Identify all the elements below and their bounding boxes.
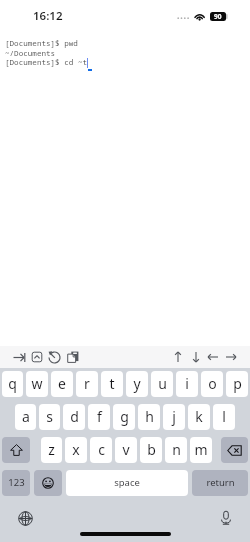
button[interactable]: q bbox=[2, 371, 23, 397]
button[interactable]: Emoji bbox=[34, 470, 62, 496]
staticText: t bbox=[109, 374, 115, 393]
staticText: g bbox=[120, 407, 129, 426]
button[interactable]: o bbox=[201, 371, 223, 397]
staticText: u bbox=[158, 374, 167, 393]
button[interactable]: h bbox=[138, 404, 160, 430]
button[interactable]: p bbox=[226, 371, 248, 397]
button[interactable]: Left bbox=[204, 346, 222, 368]
button[interactable]: c bbox=[90, 437, 112, 463]
staticText: d bbox=[70, 407, 79, 426]
button[interactable]: j bbox=[163, 404, 185, 430]
button[interactable]: v bbox=[115, 437, 137, 463]
button[interactable]: a bbox=[15, 404, 36, 430]
button[interactable]: space bbox=[66, 470, 188, 496]
button[interactable]: s bbox=[39, 404, 60, 430]
staticText: n bbox=[172, 440, 181, 459]
button[interactable]: Paste bbox=[64, 346, 82, 368]
button[interactable]: r bbox=[76, 371, 98, 397]
button[interactable]: z bbox=[41, 437, 62, 463]
button[interactable]: Tab bbox=[10, 346, 28, 368]
staticText: k bbox=[195, 407, 203, 426]
staticText: b bbox=[147, 440, 156, 459]
button[interactable]: t bbox=[101, 371, 123, 397]
staticText: space bbox=[114, 476, 140, 489]
staticText: j bbox=[172, 407, 176, 426]
button[interactable]: Control bbox=[28, 346, 46, 368]
staticText: q bbox=[8, 374, 17, 393]
button[interactable]: l bbox=[213, 404, 235, 430]
staticText: h bbox=[145, 407, 154, 426]
staticText: f bbox=[97, 407, 102, 426]
staticText: 90 bbox=[214, 12, 222, 21]
button[interactable]: x bbox=[65, 437, 87, 463]
staticText: e bbox=[58, 374, 66, 393]
button[interactable]: g bbox=[113, 404, 135, 430]
staticText: p bbox=[233, 374, 242, 393]
button[interactable]: History bbox=[45, 346, 63, 368]
button[interactable]: e bbox=[51, 371, 73, 397]
staticText: [Documents]$ cd ~t bbox=[5, 57, 88, 67]
staticText: x bbox=[72, 440, 80, 459]
staticText: w bbox=[31, 374, 43, 393]
staticText: z bbox=[48, 440, 55, 459]
button[interactable]: b bbox=[140, 437, 162, 463]
staticText: c bbox=[98, 440, 105, 459]
button[interactable]: y bbox=[126, 371, 148, 397]
button[interactable]: Shift bbox=[2, 437, 30, 463]
button[interactable]: return bbox=[192, 470, 248, 496]
button[interactable]: k bbox=[188, 404, 210, 430]
staticText: l bbox=[222, 407, 226, 426]
staticText: y bbox=[133, 374, 141, 393]
button[interactable]: 123 bbox=[2, 470, 30, 496]
button[interactable]: Right bbox=[222, 346, 240, 368]
staticText: 16:12 bbox=[33, 8, 63, 24]
button[interactable]: n bbox=[165, 437, 187, 463]
button[interactable]: u bbox=[151, 371, 173, 397]
button[interactable]: Up bbox=[169, 346, 187, 368]
button[interactable]: d bbox=[63, 404, 85, 430]
button[interactable]: Dictate bbox=[215, 507, 236, 528]
staticText: o bbox=[208, 374, 217, 393]
staticText: r bbox=[84, 374, 90, 393]
staticText: 123 bbox=[8, 476, 25, 489]
staticText: i bbox=[185, 374, 189, 393]
button[interactable]: Change keyboard bbox=[15, 508, 36, 529]
staticText: [Documents]$ pwd bbox=[5, 38, 78, 48]
button[interactable]: Backspace bbox=[221, 437, 248, 463]
staticText: s bbox=[46, 407, 53, 426]
staticText: ~/Documents bbox=[5, 48, 56, 58]
button[interactable]: w bbox=[26, 371, 48, 397]
button[interactable]: m bbox=[190, 437, 212, 463]
staticText: m bbox=[194, 440, 208, 459]
button[interactable]: i bbox=[176, 371, 198, 397]
button[interactable]: Down bbox=[187, 346, 205, 368]
button[interactable]: f bbox=[88, 404, 110, 430]
staticText: return bbox=[206, 476, 235, 489]
staticText: a bbox=[22, 407, 30, 426]
staticText: v bbox=[122, 440, 130, 459]
